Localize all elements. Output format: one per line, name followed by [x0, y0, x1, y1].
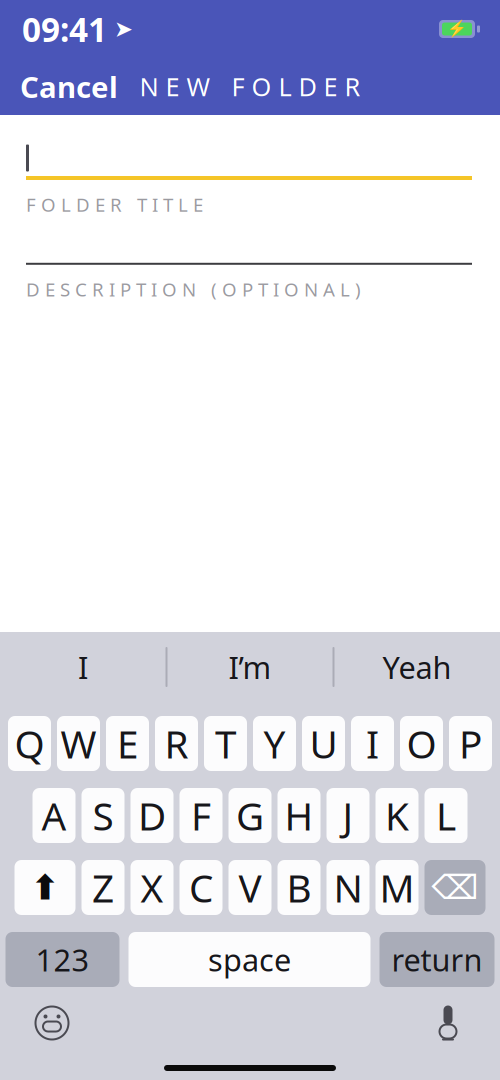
staticText: Z: [92, 862, 114, 913]
button[interactable]: O: [400, 716, 443, 771]
button[interactable]: X: [130, 860, 173, 915]
staticText: return: [391, 939, 482, 980]
button[interactable]: Cancel: [0, 58, 134, 115]
staticText: X: [140, 862, 163, 913]
staticText: W: [60, 718, 96, 769]
button[interactable]: A: [32, 788, 75, 843]
button[interactable]: Z: [81, 860, 124, 915]
button[interactable]: R: [155, 716, 198, 771]
staticText: D E S C R I P T I O N ( O P T I O N A L …: [26, 277, 361, 302]
button[interactable]: space: [128, 932, 370, 987]
button[interactable]: T: [204, 716, 247, 771]
staticText: I: [366, 718, 379, 769]
staticText: I: [78, 647, 88, 687]
staticText: Yeah: [382, 647, 451, 687]
button[interactable]: V: [228, 860, 271, 915]
button[interactable]: K: [375, 788, 418, 843]
button[interactable]: D: [130, 788, 173, 843]
button[interactable]: 123: [5, 932, 119, 987]
button[interactable]: S: [81, 788, 124, 843]
button[interactable]: I: [351, 716, 394, 771]
button[interactable]: I’m: [167, 630, 332, 704]
staticText: R: [164, 718, 188, 769]
button[interactable]: B: [277, 860, 320, 915]
staticText: O: [406, 718, 436, 769]
button[interactable]: Yeah: [334, 630, 499, 704]
staticText: space: [208, 939, 291, 980]
staticText: ⌫: [431, 869, 478, 906]
button[interactable]: I: [0, 630, 165, 704]
button[interactable]: F: [179, 788, 222, 843]
button[interactable]: Shift: [14, 860, 75, 915]
button[interactable]: Q: [8, 716, 51, 771]
staticText: F: [191, 790, 211, 841]
button[interactable]: H: [277, 788, 320, 843]
staticText: N: [333, 862, 362, 913]
staticText: S: [92, 790, 113, 841]
button[interactable]: G: [228, 788, 271, 843]
staticText: N E W F O L D E R: [139, 70, 360, 103]
staticText: V: [238, 862, 261, 913]
staticText: ➤: [114, 16, 133, 42]
button[interactable]: J: [326, 788, 369, 843]
button[interactable]: return: [379, 932, 494, 987]
staticText: P: [459, 718, 482, 769]
button[interactable]: C: [179, 860, 222, 915]
button[interactable]: N: [326, 860, 369, 915]
staticText: 123: [35, 939, 89, 980]
button[interactable]: P: [449, 716, 492, 771]
staticText: J: [342, 790, 353, 841]
staticText: C: [189, 862, 213, 913]
staticText: G: [236, 790, 264, 841]
button[interactable]: Y: [253, 716, 296, 771]
button[interactable]: Delete: [424, 860, 485, 915]
staticText: T: [215, 718, 236, 769]
staticText: K: [385, 790, 409, 841]
staticText: 09:41: [22, 7, 107, 51]
staticText: B: [286, 862, 311, 913]
staticText: Cancel: [20, 67, 118, 106]
staticText: E: [117, 718, 138, 769]
button[interactable]: E: [106, 716, 149, 771]
button[interactable]: W: [57, 716, 100, 771]
button[interactable]: Dictation: [420, 1000, 476, 1046]
staticText: Q: [14, 718, 44, 769]
staticText: ⚡: [447, 20, 467, 38]
staticText: U: [309, 718, 337, 769]
staticText: A: [41, 790, 66, 841]
staticText: H: [284, 790, 313, 841]
button[interactable]: Emoji keyboard: [24, 1000, 80, 1046]
button[interactable]: L: [424, 788, 467, 843]
staticText: ⬆: [30, 868, 59, 907]
staticText: L: [436, 790, 456, 841]
staticText: I’m: [228, 647, 271, 687]
button[interactable]: M: [375, 860, 418, 915]
staticText: Y: [263, 718, 285, 769]
staticText: M: [379, 862, 414, 913]
staticText: D: [138, 790, 166, 841]
staticText: F O L D E R T I T L E: [26, 192, 203, 217]
button[interactable]: U: [302, 716, 345, 771]
